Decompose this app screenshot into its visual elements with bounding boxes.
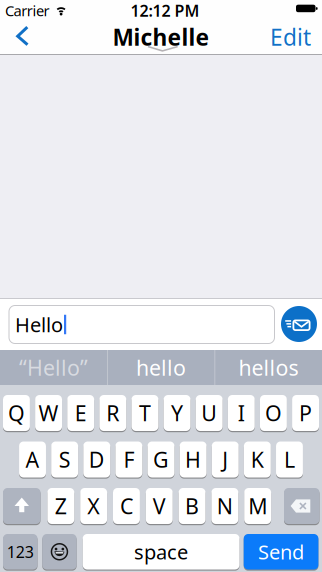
button[interactable]: hellos	[215, 350, 322, 385]
button[interactable]: hello	[107, 350, 214, 385]
staticText: hellos	[238, 353, 298, 382]
button[interactable]: B	[179, 487, 205, 525]
staticText: 123	[7, 541, 34, 562]
staticText: Q	[8, 399, 25, 427]
button[interactable]: T	[131, 394, 158, 432]
button[interactable]: Message	[8, 305, 275, 344]
button[interactable]: D	[83, 440, 110, 478]
staticText: C	[120, 492, 133, 520]
staticText: O	[265, 399, 282, 427]
staticText: M	[248, 492, 267, 520]
staticText: “Hello”	[19, 353, 88, 382]
button[interactable]: E	[67, 394, 94, 432]
staticText: Edit	[270, 22, 311, 52]
button[interactable]: W	[35, 394, 62, 432]
staticText: K	[251, 445, 264, 474]
button[interactable]: Edit	[251, 26, 311, 48]
staticText: J	[222, 445, 228, 474]
staticText: V	[153, 492, 166, 520]
staticText: Send	[258, 538, 304, 565]
button[interactable]: Y	[164, 394, 190, 432]
staticText: Carrier	[5, 1, 50, 20]
button[interactable]: “Hello”	[0, 350, 107, 385]
button[interactable]: Back	[0, 0, 40, 54]
button[interactable]: K	[244, 440, 271, 478]
staticText: hello	[136, 353, 186, 382]
staticText: U	[201, 399, 217, 427]
staticText: H	[185, 445, 201, 474]
button[interactable]: 123	[3, 533, 37, 570]
staticText: F	[123, 445, 134, 474]
button[interactable]: C	[113, 487, 140, 525]
staticText: S	[59, 445, 71, 474]
staticText: Z	[55, 492, 67, 520]
button[interactable]: M	[244, 487, 271, 525]
button[interactable]: J	[212, 440, 239, 478]
staticText: T	[139, 399, 151, 427]
staticText: Hello	[15, 311, 63, 338]
button[interactable]: Delete	[284, 487, 319, 525]
button[interactable]: Emoji	[42, 533, 77, 570]
button[interactable]: G	[147, 440, 174, 478]
button[interactable]: Q	[3, 394, 30, 432]
staticText: Y	[171, 399, 183, 427]
button[interactable]: F	[115, 440, 142, 478]
staticText: P	[299, 399, 312, 427]
staticText: Michelle	[112, 22, 209, 52]
button[interactable]: Send	[244, 533, 318, 570]
staticText: R	[106, 399, 119, 427]
button[interactable]: H	[180, 440, 207, 478]
staticText: space	[134, 538, 188, 565]
button[interactable]: N	[211, 487, 238, 525]
button[interactable]: space	[83, 533, 239, 570]
button[interactable]: Details	[0, 0, 322, 54]
staticText: I	[238, 399, 245, 427]
button[interactable]: X	[80, 487, 107, 525]
button[interactable]: U	[196, 394, 223, 432]
staticText: D	[89, 445, 105, 474]
button[interactable]: Z	[47, 487, 74, 525]
staticText: E	[75, 399, 87, 427]
staticText: B	[185, 492, 199, 520]
button[interactable]: S	[51, 440, 78, 478]
staticText: 12:12 PM	[130, 0, 199, 21]
button[interactable]: Send	[281, 306, 317, 342]
button[interactable]: L	[276, 440, 303, 478]
button[interactable]: V	[146, 487, 173, 525]
staticText: A	[25, 445, 39, 474]
staticText: W	[39, 399, 59, 427]
staticText: X	[87, 492, 100, 520]
button[interactable]: P	[292, 394, 319, 432]
staticText: N	[217, 492, 233, 520]
staticText: G	[153, 445, 169, 474]
button[interactable]: R	[99, 394, 126, 432]
button[interactable]: Shift	[3, 487, 40, 525]
button[interactable]: I	[228, 394, 255, 432]
staticText: L	[284, 445, 295, 474]
button[interactable]: A	[19, 440, 46, 478]
button[interactable]: O	[260, 394, 287, 432]
